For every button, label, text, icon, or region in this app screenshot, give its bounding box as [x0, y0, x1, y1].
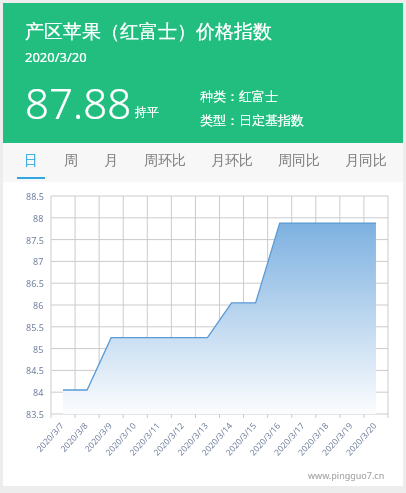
- button[interactable]: 周环比: [131, 143, 198, 182]
- button[interactable]: 周同比: [265, 143, 332, 182]
- staticText: 类型：日定基指数: [200, 112, 304, 128]
- staticText: 87.88: [25, 74, 132, 131]
- button[interactable]: 周: [51, 143, 91, 182]
- button[interactable]: 月环比: [198, 143, 265, 182]
- button[interactable]: 月: [91, 143, 131, 182]
- staticText: 月同比: [345, 152, 387, 170]
- button[interactable]: 月同比: [332, 143, 399, 182]
- staticText: www.pingguo7.cn: [308, 469, 385, 481]
- staticText: 持平: [135, 104, 159, 119]
- staticText: 种类：红富士: [200, 88, 278, 104]
- staticText: 周同比: [278, 152, 320, 170]
- staticText: 周环比: [144, 152, 186, 170]
- staticText: 日: [24, 152, 38, 170]
- staticText: 周: [64, 152, 78, 170]
- staticText: 产区苹果（红富士）价格指数: [25, 20, 272, 44]
- button[interactable]: 日: [11, 143, 51, 182]
- staticText: 2020/3/20: [25, 48, 87, 66]
- staticText: 月: [104, 152, 118, 170]
- staticText: 月环比: [211, 152, 253, 170]
